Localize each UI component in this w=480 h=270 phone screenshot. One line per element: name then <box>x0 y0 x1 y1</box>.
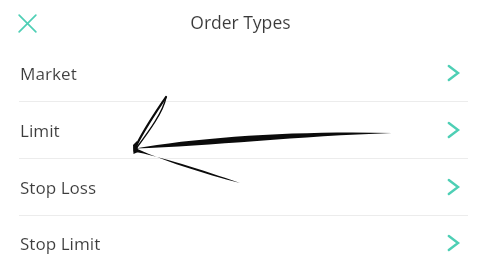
staticText: Limit <box>20 119 60 142</box>
button[interactable]: Stop Loss <box>0 159 480 215</box>
button[interactable]: Limit <box>0 102 480 158</box>
staticText: Stop Loss <box>20 176 97 199</box>
button[interactable]: Stop Limit <box>0 216 480 270</box>
button[interactable]: Market <box>0 45 480 101</box>
staticText: Order Types <box>190 10 291 34</box>
staticText: Stop Limit <box>20 232 101 255</box>
button[interactable]: Close <box>8 4 46 42</box>
staticText: Market <box>20 62 77 85</box>
